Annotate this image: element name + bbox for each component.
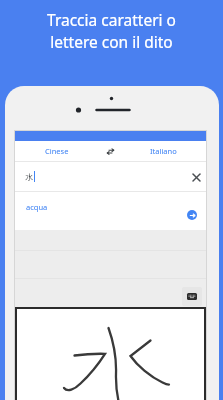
button[interactable]: Open translation (187, 210, 197, 220)
button[interactable]: Swap languages (99, 141, 121, 161)
staticText: acqua (26, 202, 48, 212)
staticText: Italiano (150, 146, 177, 156)
staticText: Traccia caratteri o (47, 9, 176, 30)
button[interactable]: Keyboard (182, 287, 202, 306)
button[interactable]: Clear (189, 170, 203, 184)
button[interactable]: Italiano (121, 141, 206, 161)
staticText: lettere con il dito (50, 31, 173, 52)
staticText: Cinese (45, 146, 69, 156)
button[interactable]: Cinese (15, 141, 99, 161)
staticText: 水 (25, 172, 33, 182)
